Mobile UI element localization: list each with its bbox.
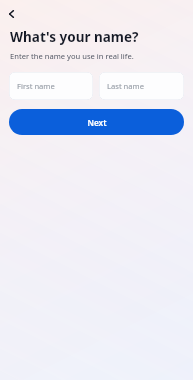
button[interactable]: Back (2, 4, 22, 24)
button[interactable]: First name (9, 72, 93, 100)
staticText: What's your name? (10, 28, 139, 46)
button[interactable]: Last name (99, 72, 184, 100)
button[interactable]: Next (9, 109, 184, 135)
staticText: Next (87, 117, 107, 128)
staticText: Last name (107, 81, 144, 91)
staticText: Enter the name you use in real life. (10, 51, 134, 61)
staticText: First name (17, 81, 55, 91)
